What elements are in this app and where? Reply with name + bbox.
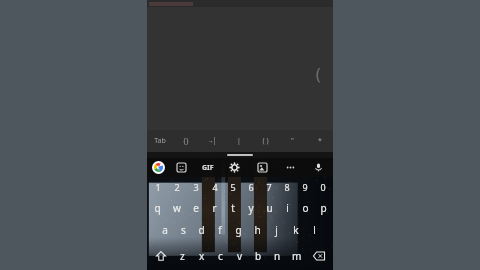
button[interactable]: y [242, 197, 260, 219]
staticText: a [162, 223, 168, 237]
button[interactable]: f [210, 219, 229, 241]
button[interactable]: w [167, 197, 186, 219]
staticText: m [292, 249, 302, 263]
staticText: k [293, 223, 299, 237]
button[interactable]: p [314, 197, 332, 219]
button[interactable]: Google search [152, 161, 165, 174]
staticText: | [237, 136, 241, 146]
staticText: 1 [155, 181, 161, 193]
button[interactable]: q [148, 197, 167, 219]
staticText: j [275, 223, 278, 237]
button[interactable]: " [279, 130, 306, 152]
button[interactable]: t [224, 197, 242, 219]
staticText: y [248, 201, 254, 215]
button[interactable]: Settings [227, 160, 242, 175]
staticText: * [318, 136, 322, 146]
button[interactable]: z [173, 241, 192, 270]
staticText: Tab [154, 136, 166, 146]
button[interactable]: d [192, 219, 210, 241]
button[interactable]: e [186, 197, 205, 219]
staticText: s [181, 223, 186, 237]
staticText: v [237, 249, 243, 263]
button[interactable]: k [286, 219, 305, 241]
button[interactable]: a [156, 219, 174, 241]
button[interactable]: 7 [260, 177, 278, 197]
staticText: z [180, 249, 185, 263]
button[interactable]: l [305, 219, 324, 241]
staticText: 9 [302, 181, 308, 193]
button[interactable]: c [211, 241, 230, 270]
button[interactable]: ( ) [252, 130, 279, 152]
button[interactable]: o [296, 197, 314, 219]
button[interactable]: j [267, 219, 286, 241]
staticText: 7 [266, 181, 272, 193]
button[interactable]: Shift [149, 241, 173, 270]
staticText: " [291, 136, 294, 146]
staticText: 0 [320, 181, 326, 193]
button[interactable]: Stickers [174, 160, 189, 175]
button[interactable]: Tab [147, 130, 173, 152]
button[interactable]: 8 [278, 177, 296, 197]
button[interactable]: r [205, 197, 224, 219]
staticText: →| [208, 136, 217, 146]
staticText: b [255, 249, 262, 263]
button[interactable]: 2 [167, 177, 186, 197]
button[interactable]: {} [173, 130, 199, 152]
staticText: u [266, 201, 273, 215]
button[interactable]: 9 [296, 177, 314, 197]
staticText: t [231, 201, 235, 215]
button[interactable]: GIF [202, 163, 214, 173]
staticText: c [218, 249, 223, 263]
button[interactable]: v [230, 241, 249, 270]
button[interactable]: h [248, 219, 267, 241]
staticText: 5 [230, 181, 236, 193]
button[interactable]: More options [283, 160, 298, 175]
button[interactable]: →| [199, 130, 225, 152]
staticText: d [198, 223, 205, 237]
staticText: {} [183, 136, 189, 146]
button[interactable]: g [229, 219, 248, 241]
staticText: o [302, 201, 309, 215]
staticText: n [274, 249, 281, 263]
button[interactable]: 0 [314, 177, 332, 197]
button[interactable]: i [278, 197, 296, 219]
button[interactable]: b [249, 241, 268, 270]
staticText: q [154, 201, 161, 215]
staticText: i [286, 201, 289, 215]
button[interactable]: | [225, 130, 252, 152]
button[interactable]: Backspace [306, 241, 331, 270]
button[interactable]: 3 [186, 177, 205, 197]
button[interactable]: 4 [205, 177, 224, 197]
staticText: h [254, 223, 261, 237]
button[interactable]: * [306, 130, 333, 152]
button[interactable]: Voice input [311, 160, 326, 175]
button[interactable]: Themes [255, 160, 270, 175]
button[interactable]: u [260, 197, 278, 219]
button[interactable]: 6 [242, 177, 260, 197]
staticText: 3 [193, 181, 199, 193]
button[interactable]: m [287, 241, 306, 270]
staticText: 2 [174, 181, 180, 193]
staticText: ( [313, 62, 324, 85]
button[interactable]: s [174, 219, 192, 241]
staticText: w [173, 201, 181, 215]
staticText: 4 [212, 181, 218, 193]
staticText: l [313, 223, 316, 237]
staticText: r [212, 201, 217, 215]
button[interactable]: 5 [224, 177, 242, 197]
staticText: 6 [248, 181, 254, 193]
staticText: x [199, 249, 205, 263]
staticText: ( ) [262, 136, 269, 146]
staticText: GIF [202, 163, 214, 173]
staticText: e [193, 201, 199, 215]
staticText: g [235, 223, 242, 237]
button[interactable]: 1 [148, 177, 167, 197]
button[interactable]: x [192, 241, 211, 270]
staticText: p [320, 201, 327, 215]
button[interactable]: n [268, 241, 287, 270]
staticText: f [218, 223, 222, 237]
staticText: 8 [284, 181, 290, 193]
